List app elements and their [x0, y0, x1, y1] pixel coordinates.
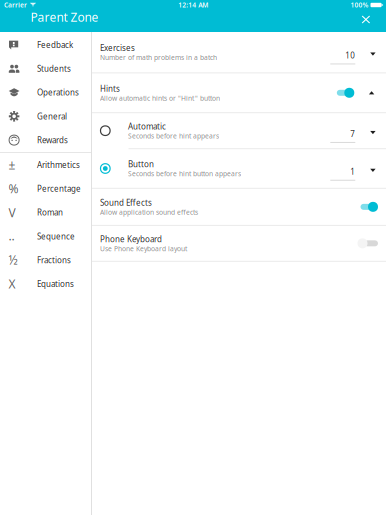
button[interactable]: Toggle on	[337, 86, 354, 100]
staticText: 7	[350, 129, 355, 139]
staticText: Number of math problems in a batch	[100, 53, 217, 62]
staticText: Allow application sound effects	[100, 208, 198, 217]
staticText: 10	[345, 50, 355, 61]
button[interactable]: 1	[330, 157, 378, 179]
button[interactable]: Toggle on	[360, 200, 378, 214]
staticText: Feedback	[37, 40, 73, 50]
staticText: 12:14 AM	[178, 1, 208, 9]
button[interactable]: V	[0, 201, 91, 224]
button[interactable]: Close	[356, 13, 376, 29]
staticText: ..	[9, 228, 15, 244]
staticText: Allow automatic hints or "Hint" button	[100, 94, 220, 102]
staticText: %	[9, 181, 19, 197]
button[interactable]: Feedback	[0, 33, 91, 57]
button[interactable]: Toggle off	[357, 236, 378, 250]
staticText: Arithmetics	[37, 160, 80, 170]
staticText: Use Phone Keyboard layout	[100, 244, 187, 253]
staticText: Hints	[100, 83, 120, 94]
staticText: Roman	[37, 207, 63, 218]
staticText: Seconds before hint appears	[128, 131, 219, 140]
staticText: X	[9, 276, 16, 292]
button[interactable]: Students	[0, 57, 91, 81]
staticText: Seconds before hint button appears	[128, 169, 241, 178]
staticText: Fractions	[37, 255, 71, 265]
staticText: Percentage	[37, 183, 81, 194]
button[interactable]: X	[0, 272, 91, 296]
staticText: Equations	[37, 279, 74, 289]
button[interactable]: ..	[0, 224, 91, 248]
staticText: Exercises	[100, 43, 135, 53]
button[interactable]: General	[0, 104, 91, 128]
staticText: V	[9, 204, 16, 220]
button[interactable]: Collapse	[368, 87, 376, 99]
staticText: Students	[37, 63, 71, 74]
staticText: Sound Effects	[100, 197, 152, 208]
button[interactable]: Operations	[0, 81, 91, 104]
button[interactable]: %	[0, 177, 91, 201]
staticText: General	[37, 111, 67, 122]
button[interactable]: ±	[0, 153, 91, 177]
staticText: Rewards	[37, 135, 68, 145]
staticText: 100%	[350, 1, 368, 9]
staticText: Automatic	[128, 121, 166, 132]
button[interactable]: Rewards	[0, 128, 91, 152]
staticText: ½	[9, 252, 18, 268]
button[interactable]: 7	[330, 120, 378, 142]
staticText: Phone Keyboard	[100, 234, 162, 244]
button[interactable]: ½	[0, 248, 91, 272]
staticText: Button	[128, 159, 154, 169]
button[interactable]: 10	[330, 41, 378, 63]
staticText: ±	[9, 157, 16, 173]
staticText: Parent Zone	[30, 9, 98, 25]
staticText: 1	[350, 166, 355, 177]
staticText: Operations	[37, 87, 79, 98]
staticText: Carrier	[4, 1, 27, 9]
staticText: Sequence	[37, 231, 75, 242]
